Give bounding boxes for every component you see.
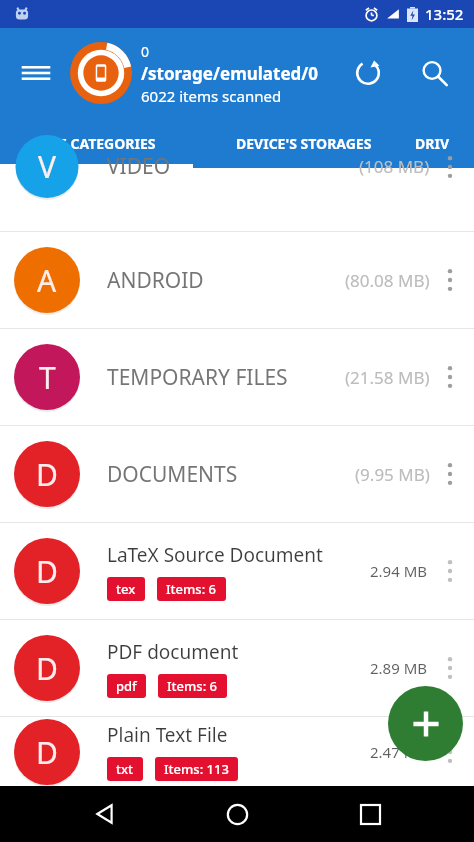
button[interactable]: Open navigation menu xyxy=(12,49,60,97)
staticText: Items: 6 xyxy=(166,580,217,598)
staticText: VIDEO xyxy=(107,152,171,181)
staticText: DEVICE'S STORAGES xyxy=(236,134,372,153)
staticText: (80.08 MB) xyxy=(345,269,430,292)
button[interactable]: Recent apps xyxy=(342,786,398,842)
staticText: Items: 6 xyxy=(167,677,218,695)
staticText: T xyxy=(39,357,56,398)
staticText: 0 xyxy=(141,42,150,61)
staticText: ANDROID xyxy=(107,266,204,295)
staticText: FILE CATEGORIES xyxy=(38,134,156,153)
staticText: PDF document xyxy=(107,639,239,665)
staticText: D xyxy=(36,454,58,495)
button[interactable]: Storage xyxy=(70,42,132,104)
staticText: (9.95 MB) xyxy=(355,463,430,486)
staticText: Items: 113 xyxy=(164,760,229,778)
button[interactable]: T xyxy=(0,329,474,425)
staticText: A xyxy=(37,260,57,301)
button[interactable]: Search xyxy=(410,49,458,97)
staticText: (21.58 MB) xyxy=(345,366,430,389)
staticText: txt xyxy=(116,760,134,778)
staticText: 2.94 MB xyxy=(370,561,428,581)
staticText: D xyxy=(36,732,58,773)
button[interactable]: DRIV xyxy=(415,118,474,168)
staticText: DOCUMENTS xyxy=(107,460,238,489)
staticText: D xyxy=(36,648,58,689)
button[interactable]: D xyxy=(0,523,474,619)
button[interactable]: Home xyxy=(209,786,265,842)
staticText: pdf xyxy=(116,677,137,695)
button[interactable]: D xyxy=(0,620,474,716)
button[interactable]: A xyxy=(0,232,474,328)
staticText: Plain Text File xyxy=(107,722,228,748)
button[interactable]: D xyxy=(0,426,474,522)
button[interactable]: DEVICE'S STORAGES xyxy=(193,118,415,168)
staticText: 2.47 MB xyxy=(370,742,428,762)
staticText: 6022 items scanned xyxy=(141,86,282,106)
staticText: 13:52 xyxy=(425,4,464,24)
button[interactable]: FILE CATEGORIES xyxy=(0,118,193,168)
button[interactable]: Back xyxy=(77,786,133,842)
staticText: 2.89 MB xyxy=(370,658,428,678)
button[interactable]: Refresh xyxy=(344,49,392,97)
staticText: (108 MB) xyxy=(359,155,430,178)
staticText: DRIV xyxy=(415,134,449,153)
staticText: tex xyxy=(116,580,136,598)
staticText: TEMPORARY FILES xyxy=(107,363,288,392)
button[interactable]: D xyxy=(0,717,474,786)
button[interactable]: Add xyxy=(388,686,463,761)
staticText: /storage/emulated/0 xyxy=(141,62,319,85)
staticText: D xyxy=(36,551,58,592)
staticText: V xyxy=(38,146,56,187)
staticText: LaTeX Source Document xyxy=(107,542,323,568)
